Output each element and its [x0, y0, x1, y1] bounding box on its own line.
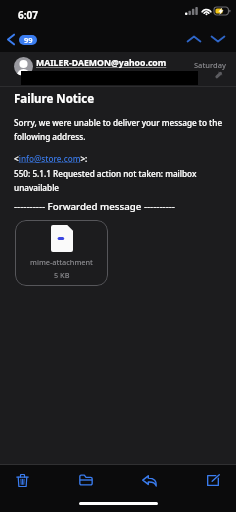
- staticText: mime-attachment: [30, 257, 93, 267]
- staticText: 6:07: [18, 8, 38, 22]
- staticText: MAILER-DAEMON@yahoo.com: [36, 57, 167, 69]
- other: Back: [7, 34, 15, 45]
- button[interactable]: Move to folder: [76, 470, 96, 490]
- button[interactable]: Delete: [12, 470, 32, 490]
- button[interactable]: Back: [7, 33, 37, 44]
- staticText: Sorry, we were unable to deliver your me…: [14, 117, 226, 142]
- button[interactable]: mime-attachment: [15, 220, 108, 286]
- staticText: Failure Notice: [14, 91, 95, 107]
- staticText: Saturday: [194, 60, 226, 70]
- staticText: ---------- Forwarded message ----------: [14, 200, 175, 213]
- button[interactable]: Reply: [139, 470, 159, 490]
- button[interactable]: Previous message: [182, 26, 206, 50]
- staticText: 550: 5.1.1 Requested action not taken: m…: [14, 168, 219, 193]
- button[interactable]: Compose: [203, 470, 223, 490]
- button[interactable]: Next message: [206, 26, 230, 50]
- staticText: <info@store.com>:: [14, 153, 88, 164]
- staticText: 99: [24, 35, 33, 45]
- staticText: 5 KB: [54, 270, 70, 280]
